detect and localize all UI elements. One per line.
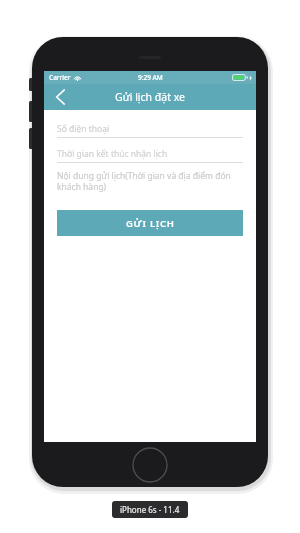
button[interactable]: Số điện thoại — [57, 122, 243, 135]
staticText: Số điện thoại — [57, 123, 110, 135]
button[interactable]: Back — [44, 84, 76, 110]
button[interactable]: Nội dung gửi lịch(Thời gian và địa điểm … — [57, 170, 243, 198]
staticText: 9:29 AM — [138, 73, 163, 82]
staticText: Carrier — [49, 73, 71, 82]
staticText: iPhone 6s - 11.4 — [120, 504, 180, 515]
staticText: Gửi lịch đặt xe — [115, 90, 185, 104]
button[interactable]: Thời gian kết thúc nhận lịch — [57, 147, 243, 160]
staticText: Thời gian kết thúc nhận lịch — [57, 148, 168, 160]
staticText: GỬI LỊCH — [126, 217, 175, 230]
staticText: Nội dung gửi lịch(Thời gian và địa điểm … — [57, 170, 243, 192]
button[interactable]: GỬI LỊCH — [57, 210, 243, 236]
